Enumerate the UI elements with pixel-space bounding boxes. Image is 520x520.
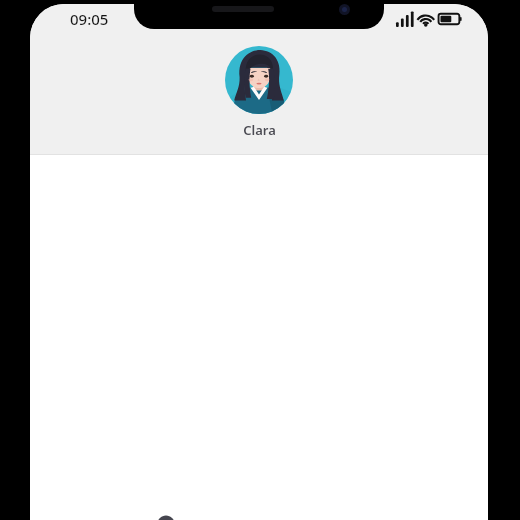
other: Navigation [158, 511, 174, 520]
staticText: 09:05 [70, 9, 109, 29]
staticText: Clara [243, 121, 276, 139]
button[interactable]: Profile photo of Clara [215, 44, 303, 141]
other: Profile photo of Clara [225, 46, 293, 114]
